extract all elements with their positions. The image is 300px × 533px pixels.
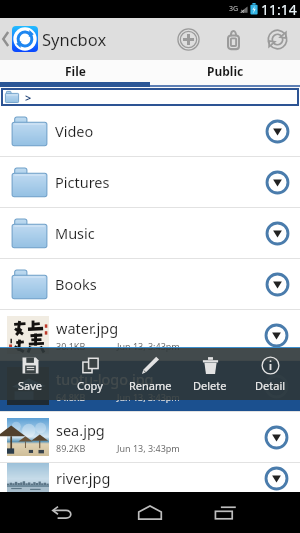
button[interactable]: Rename — [120, 348, 180, 400]
button[interactable]: More actions — [262, 423, 290, 451]
staticText: Music — [55, 223, 95, 243]
button[interactable]: Detail — [240, 348, 300, 400]
staticText: Jun 13, 3:43pm — [117, 340, 180, 352]
button[interactable]: Home — [112, 492, 188, 533]
staticText: Jun 13, 3:43pm — [117, 442, 180, 454]
button[interactable]: Add — [165, 18, 211, 60]
button[interactable]: Books — [0, 259, 300, 310]
staticText: Syncbox — [42, 28, 107, 50]
staticText: Jun 13, 3:43pm — [117, 391, 180, 403]
button[interactable]: More actions — [262, 464, 290, 492]
staticText: 30.1KB — [56, 340, 86, 352]
staticText: 3G — [229, 4, 239, 14]
button[interactable]: More actions — [263, 168, 291, 196]
staticText: 11:14 — [261, 0, 297, 18]
button[interactable]: Lock — [211, 18, 255, 60]
button[interactable]: tuotu-logo.jpg — [0, 361, 300, 412]
staticText: Public — [207, 63, 244, 79]
staticText: > — [25, 90, 32, 104]
button[interactable]: Back — [24, 492, 100, 533]
button[interactable]: Video — [0, 106, 300, 157]
staticText: sea.jpg — [56, 420, 105, 440]
button[interactable]: Music — [0, 208, 300, 259]
staticText: water.jpg — [56, 318, 119, 338]
button[interactable]: Sync — [255, 18, 300, 60]
button[interactable]: water.jpg — [0, 310, 300, 361]
button[interactable]: More actions — [263, 219, 291, 247]
button[interactable]: More actions — [263, 270, 291, 298]
button[interactable]: Delete — [180, 348, 240, 400]
staticText: tuotu-logo.jpg — [56, 369, 154, 389]
staticText: Books — [55, 274, 97, 294]
staticText: 64.8KB — [56, 391, 86, 403]
button[interactable]: river.jpg — [0, 463, 300, 492]
button[interactable]: File — [0, 60, 150, 82]
button[interactable]: Save — [0, 348, 60, 400]
staticText: Delete — [193, 378, 227, 393]
staticText: Rename — [129, 378, 172, 393]
staticText: File — [65, 63, 86, 79]
button[interactable]: Pictures — [0, 157, 300, 208]
button[interactable]: More actions — [263, 117, 291, 145]
button[interactable]: > — [5, 90, 297, 104]
button[interactable]: More actions — [262, 321, 290, 349]
staticText: river.jpg — [56, 468, 111, 488]
button[interactable]: Public — [150, 60, 300, 82]
button[interactable]: More actions — [262, 372, 290, 400]
staticText: Video — [55, 121, 94, 141]
button[interactable]: sea.jpg — [0, 412, 300, 463]
staticText: Detail — [255, 378, 286, 393]
staticText: 89.2KB — [56, 442, 86, 454]
button[interactable]: Copy — [60, 348, 120, 400]
staticText: Save — [18, 378, 43, 393]
staticText: Pictures — [55, 172, 110, 192]
staticText: Copy — [77, 378, 103, 393]
button[interactable]: Navigate up — [0, 18, 38, 60]
button[interactable]: Recent apps — [187, 492, 263, 533]
